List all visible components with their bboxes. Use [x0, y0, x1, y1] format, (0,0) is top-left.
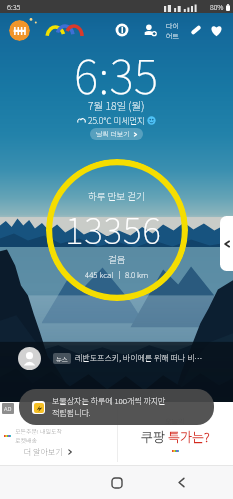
button[interactable]: Add friend: [143, 23, 157, 37]
staticText: 날씨 더보기: [96, 129, 130, 139]
button[interactable]: 뉴스: [18, 346, 229, 370]
staticText: 25.0℃ 미세먼지: [88, 114, 145, 126]
staticText: 오늘의: [165, 416, 185, 426]
staticText: 13356: [65, 203, 162, 254]
staticText: 특가는?: [168, 427, 210, 446]
staticText: 하루 만보 걷기: [88, 189, 145, 203]
button[interactable]: 다이: [166, 21, 179, 41]
staticText: 뉴스: [56, 354, 68, 363]
staticText: 보물상자는 하루에 100개씩 까지만: [52, 395, 166, 407]
staticText: 레반도프스키, 바이에른 위해 떠나 비…: [75, 352, 203, 364]
button[interactable]: 날씨 더보기: [90, 128, 143, 140]
staticText: 로켓배송: [15, 436, 38, 445]
button[interactable]: Emoji sticker: [9, 20, 30, 41]
button[interactable]: Cash app: [115, 23, 129, 37]
staticText: 다이: [166, 21, 179, 31]
staticText: 445 kcal: [85, 269, 114, 281]
staticText: 7월 18일 (월): [88, 98, 145, 113]
staticText: 6:35: [74, 41, 159, 108]
staticText: 80%: [210, 2, 224, 12]
button[interactable]: Back: [166, 466, 197, 499]
button[interactable]: Heart rate: [209, 23, 224, 38]
button[interactable]: Daily steps 13356: [46, 159, 188, 301]
staticText: 적립됩니다.: [52, 407, 91, 419]
staticText: 걸음: [108, 252, 126, 266]
button[interactable]: Naver: [45, 21, 77, 38]
button[interactable]: 보물상자는 하루에 100개씩 까지만: [19, 389, 214, 425]
staticText: 더 알아보기: [24, 446, 63, 458]
staticText: 모든주문! 내일도착: [15, 427, 63, 436]
staticText: 8.0 km: [125, 269, 149, 281]
button[interactable]: 더 알아보기: [24, 446, 73, 458]
staticText: 6:35: [7, 1, 21, 12]
button[interactable]: AD: [0, 402, 233, 466]
button[interactable]: Home: [101, 466, 132, 499]
staticText: 어트: [166, 31, 179, 41]
staticText: AD: [4, 404, 12, 413]
button[interactable]: Open edge panel: [220, 216, 233, 271]
button[interactable]: Medicine reminder: [189, 23, 203, 37]
staticText: 쿠팡: [141, 427, 168, 446]
